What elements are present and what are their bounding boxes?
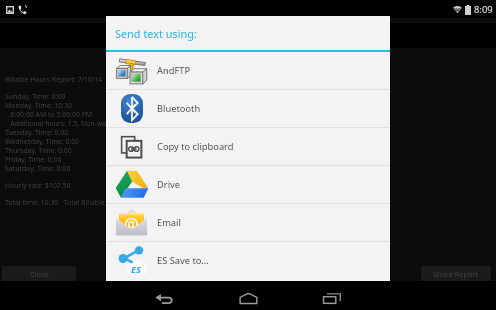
button[interactable]: AndFTP <box>106 52 390 89</box>
button[interactable]: Back <box>134 281 194 310</box>
button[interactable]: Share Report <box>421 266 491 281</box>
staticText: Bluetooth <box>157 102 201 115</box>
button[interactable]: Close <box>2 266 76 281</box>
button[interactable]: Copy to clipboard <box>106 128 390 165</box>
button[interactable]: @ <box>106 204 390 241</box>
staticText: Drive <box>157 178 180 191</box>
button[interactable]: Home <box>218 281 278 310</box>
button[interactable]: ES <box>106 242 390 279</box>
staticText: Close <box>30 269 49 279</box>
staticText: 8:09 <box>474 3 493 16</box>
staticText: Wednesday, Time: 0:00 <box>5 137 80 146</box>
button[interactable]: Recent apps <box>302 281 362 310</box>
staticText: ES <box>131 263 141 275</box>
staticText: Email <box>157 216 181 229</box>
staticText: Send text using: <box>115 26 197 41</box>
staticText: 8:00:00 AM to 5:00:00 PM <box>5 110 93 119</box>
staticText: Sunday, Time: 0:00 <box>5 92 66 101</box>
staticText: ES Save to... <box>157 254 209 267</box>
staticText: AndFTP <box>157 64 191 77</box>
staticText: Hourly rate: $107.50 <box>5 181 71 190</box>
staticText: Share Report <box>433 269 479 279</box>
staticText: Additional hours: 1.5, Non-wor <box>5 119 110 128</box>
staticText: Monday, Time: 10:30 <box>5 101 72 110</box>
staticText: Saturday, Time: 0:00 <box>5 164 71 173</box>
staticText: Friday, Time: 0:00 <box>5 155 62 164</box>
staticText: Copy to clipboard <box>157 140 234 153</box>
button[interactable]: Drive <box>106 166 390 203</box>
staticText: Billable Hours Report: 7/10/14 <box>5 75 103 84</box>
staticText: @ <box>124 213 139 235</box>
staticText: Tuesday, Time: 0:00 <box>5 128 69 137</box>
staticText: Thursday, Time: 0:00 <box>5 146 72 155</box>
button[interactable]: Bluetooth <box>106 90 390 127</box>
staticText: Total time: 10:30 Total Billable <box>5 198 105 207</box>
